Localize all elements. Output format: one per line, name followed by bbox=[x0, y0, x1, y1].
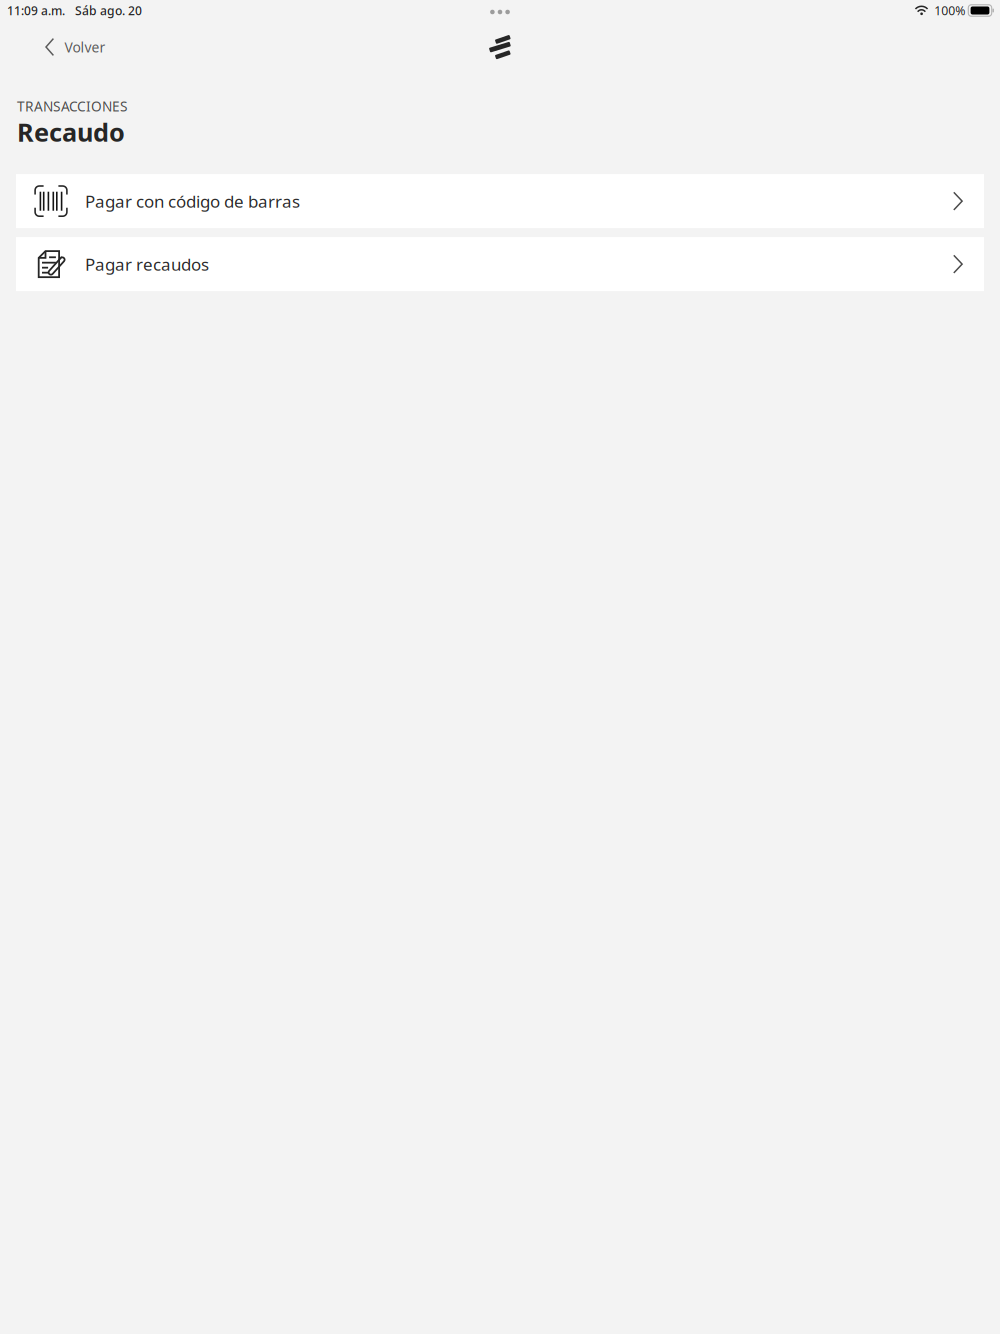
staticText: 100% bbox=[934, 2, 965, 19]
staticText: TRANSACCIONES bbox=[17, 97, 128, 116]
staticText: Volver bbox=[65, 38, 106, 56]
staticText: 11:09 a.m. bbox=[7, 2, 65, 19]
button[interactable]: Pagar recaudos bbox=[16, 237, 984, 291]
staticText: Pagar con código de barras bbox=[85, 190, 300, 213]
staticText: Recaudo bbox=[17, 115, 125, 149]
button[interactable]: Pagar con código de barras bbox=[16, 174, 984, 228]
staticText: Sáb ago. 20 bbox=[75, 2, 142, 19]
button[interactable]: Volver bbox=[0, 29, 124, 65]
staticText: Pagar recaudos bbox=[85, 253, 209, 276]
